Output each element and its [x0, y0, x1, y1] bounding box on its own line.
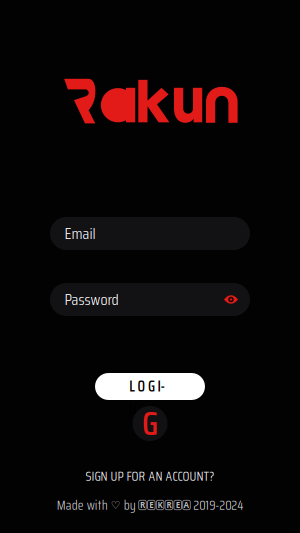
- staticText: 2019-2024: [190, 494, 243, 515]
- staticText: SIGN UP FOR AN ACCOUNT?: [85, 465, 214, 486]
- staticText: Made with: [57, 494, 111, 515]
- button[interactable]: Sign in with Google: [132, 406, 167, 441]
- staticText: E: [176, 500, 180, 510]
- staticText: Password: [64, 287, 118, 312]
- staticText: R: [166, 500, 171, 510]
- staticText: A: [183, 500, 189, 510]
- staticText: E: [149, 500, 153, 510]
- staticText: K: [158, 500, 163, 510]
- button[interactable]: SIGN UP FOR AN ACCOUNT?: [85, 470, 214, 482]
- staticText: R: [140, 500, 145, 510]
- staticText: G: [142, 397, 158, 450]
- staticText: LOGIN: [129, 375, 171, 398]
- staticText: by: [121, 494, 139, 515]
- button[interactable]: LOGIN: [95, 373, 205, 400]
- staticText: ♡: [111, 499, 121, 511]
- staticText: Email: [64, 221, 95, 246]
- button[interactable]: Show password: [218, 286, 244, 312]
